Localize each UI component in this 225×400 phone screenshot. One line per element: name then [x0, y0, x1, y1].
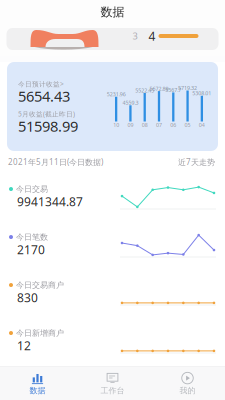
staticText: 今日笔数: [16, 232, 48, 242]
staticText: 2021年5月11日(今日数据): [8, 157, 103, 167]
staticText: 5522.45: [135, 87, 154, 94]
staticText: 5567.7: [165, 86, 181, 93]
staticText: 工作台: [100, 386, 124, 395]
button[interactable]: 我的: [150, 367, 225, 400]
staticText: 4559.3: [122, 99, 138, 106]
staticText: 数据: [29, 386, 45, 395]
staticText: 09: [127, 121, 133, 129]
staticText: 12: [17, 337, 31, 353]
button[interactable]: 今日新增商户: [0, 317, 225, 365]
staticText: 5672.89: [149, 85, 168, 92]
staticText: 3: [132, 30, 137, 42]
button[interactable]: 今日交易商户: [0, 269, 225, 317]
staticText: 5308.01: [192, 90, 211, 97]
staticText: 近7天走势: [178, 157, 215, 167]
button[interactable]: 工作台: [75, 367, 150, 400]
staticText: 今日交易: [16, 184, 48, 194]
staticText: 9941344.87: [17, 193, 83, 209]
staticText: 今日新增商户: [16, 328, 64, 338]
staticText: 今日交易商户: [16, 280, 64, 290]
button[interactable]: 今日交易: [0, 173, 225, 221]
button[interactable]: 今日笔数: [0, 221, 225, 269]
staticText: 06: [170, 121, 176, 129]
staticText: 04: [199, 121, 205, 129]
staticText: 4: [148, 28, 155, 44]
staticText: 10: [113, 121, 119, 129]
staticText: 今日预计收益>: [18, 80, 64, 88]
staticText: 5231.96: [107, 91, 126, 98]
staticText: 830: [17, 289, 38, 305]
button[interactable]: 数据: [0, 367, 75, 400]
staticText: 5654.43: [18, 86, 70, 106]
staticText: 5719.32: [178, 84, 197, 92]
staticText: 数据: [100, 5, 124, 19]
staticText: 05: [185, 121, 191, 129]
staticText: 51598.99: [18, 116, 78, 136]
staticText: 2170: [17, 241, 45, 257]
staticText: 08: [142, 121, 148, 129]
staticText: 5月收益(截止昨日): [18, 110, 75, 118]
staticText: 我的: [179, 386, 195, 395]
staticText: 07: [156, 121, 162, 129]
